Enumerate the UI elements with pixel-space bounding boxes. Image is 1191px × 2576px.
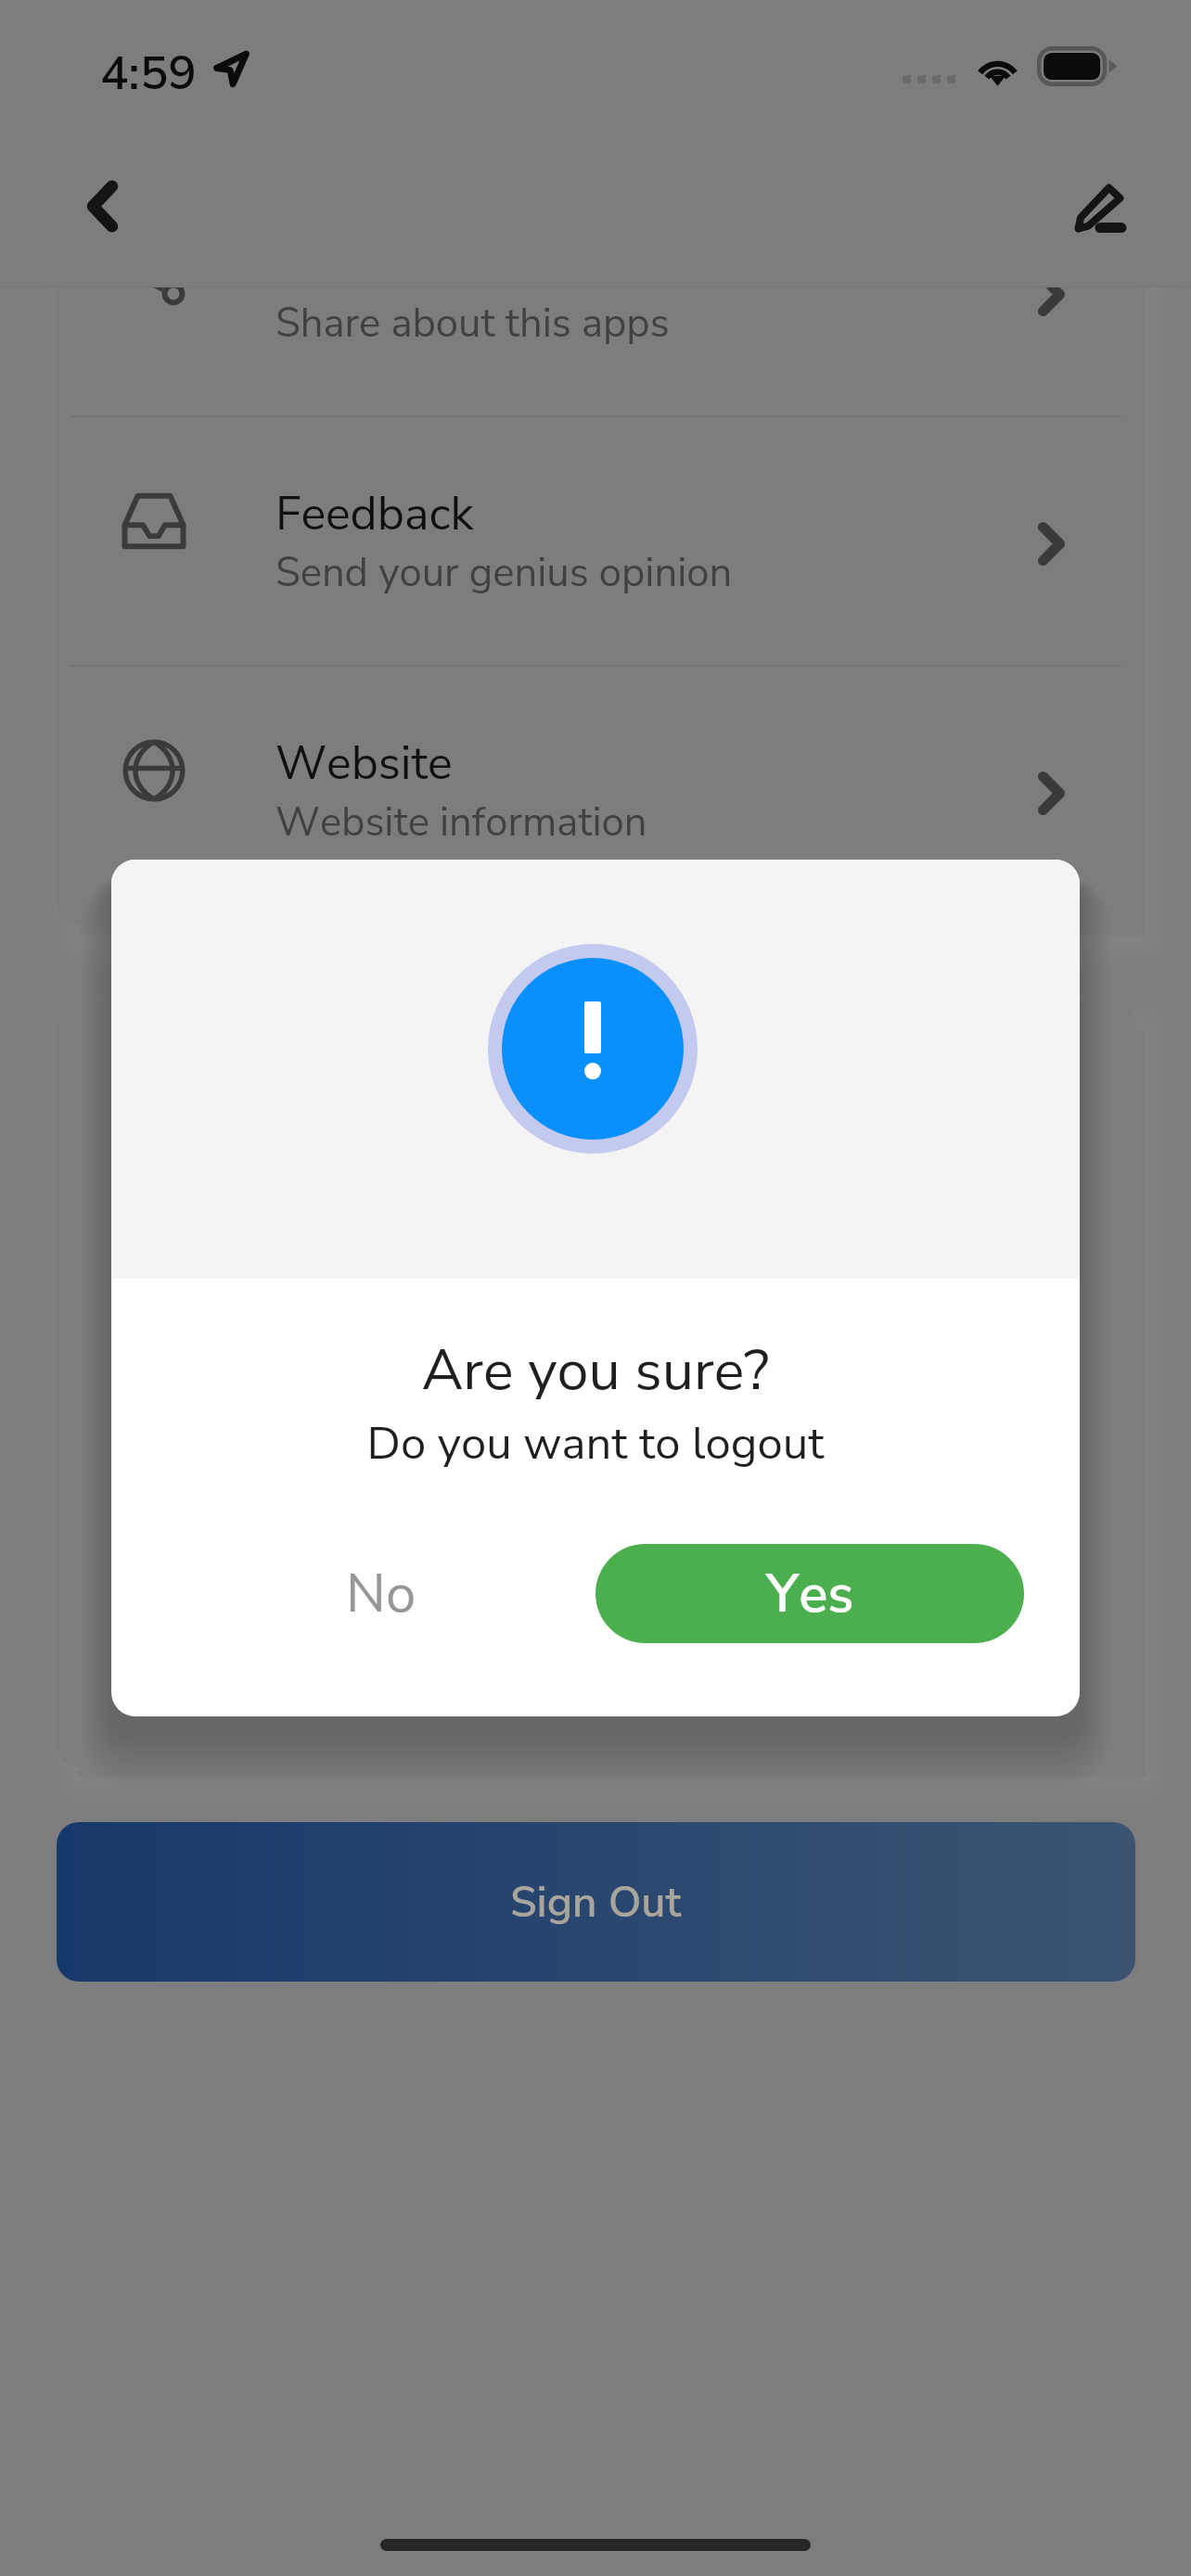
staticText: Share about this apps (275, 296, 670, 351)
button[interactable]: Yes (595, 1544, 1024, 1643)
button[interactable]: Edit (1064, 172, 1134, 243)
button[interactable]: Feedback (56, 417, 1135, 665)
staticText: Feedback (275, 482, 474, 545)
staticText: Do you want to logout (111, 1412, 1080, 1474)
staticText: Send your genius opinion (275, 545, 733, 600)
button[interactable]: Share (56, 168, 1135, 415)
staticText: Website (275, 732, 453, 795)
button[interactable]: Back (67, 171, 137, 241)
staticText: Yes (766, 1557, 854, 1630)
staticText: Sign Out (510, 1873, 682, 1932)
staticText: Website information (275, 795, 647, 849)
staticText: 4:59 (100, 41, 197, 106)
staticText: No (346, 1557, 416, 1630)
button[interactable]: Sign Out (57, 1822, 1135, 1982)
button[interactable]: Website (56, 667, 1135, 914)
button[interactable]: No (242, 1544, 520, 1643)
staticText: Are you sure? (111, 1332, 1080, 1409)
